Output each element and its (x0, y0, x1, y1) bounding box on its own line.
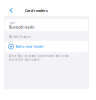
staticText: Card readers (25, 8, 48, 13)
staticText: Type (8, 21, 15, 25)
staticText: Select Type to search options and add a … (8, 54, 68, 61)
staticText: My Card Readers (8, 35, 30, 39)
staticText: Add a new reader (15, 44, 43, 49)
staticText: Bluetooth reader (8, 25, 34, 29)
button[interactable]: Back (4, 5, 25, 15)
button[interactable]: Add a new reader (5, 41, 88, 52)
